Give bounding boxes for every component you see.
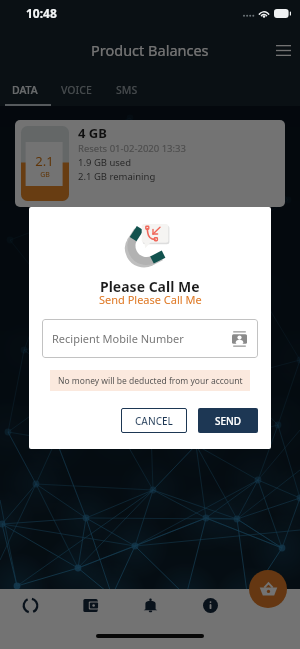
staticText: Product Balances bbox=[91, 40, 209, 60]
staticText: 1.9 GB used bbox=[78, 156, 132, 169]
button[interactable]: Recipient Mobile Number bbox=[42, 319, 258, 358]
staticText: CANCEL bbox=[135, 414, 173, 428]
button[interactable]: SEND bbox=[198, 408, 258, 433]
button[interactable]: Shop bbox=[249, 570, 287, 608]
button[interactable]: Choose contact bbox=[228, 328, 250, 350]
staticText: SMS bbox=[116, 83, 138, 97]
button[interactable]: Refresh bbox=[0, 589, 60, 622]
button[interactable]: 2.1 bbox=[15, 120, 285, 207]
staticText: 4 GB bbox=[78, 124, 107, 142]
button[interactable]: Notifications bbox=[120, 589, 180, 622]
staticText: GB bbox=[40, 170, 50, 180]
staticText: SEND bbox=[215, 414, 242, 428]
staticText: VOICE bbox=[61, 83, 92, 97]
button[interactable]: Wallet bbox=[60, 589, 120, 622]
button[interactable]: Info bbox=[180, 589, 240, 622]
button[interactable]: CANCEL bbox=[121, 408, 187, 433]
staticText: Resets 01-02-2020 13:33 bbox=[78, 142, 186, 155]
button[interactable]: SMS bbox=[103, 74, 151, 106]
button[interactable]: DATA bbox=[0, 74, 50, 106]
staticText: DATA bbox=[12, 83, 38, 97]
staticText: Please Call Me bbox=[100, 277, 200, 296]
staticText: 2.1 bbox=[35, 152, 54, 170]
staticText: No money will be deducted from your acco… bbox=[58, 375, 243, 387]
staticText: 2.1 GB remaining bbox=[78, 170, 156, 183]
staticText: Recipient Mobile Number bbox=[52, 331, 184, 346]
button[interactable]: VOICE bbox=[50, 74, 103, 106]
button[interactable]: Menu bbox=[266, 28, 300, 72]
staticText: 10:48 bbox=[26, 5, 57, 21]
staticText: Send Please Call Me bbox=[99, 292, 202, 307]
